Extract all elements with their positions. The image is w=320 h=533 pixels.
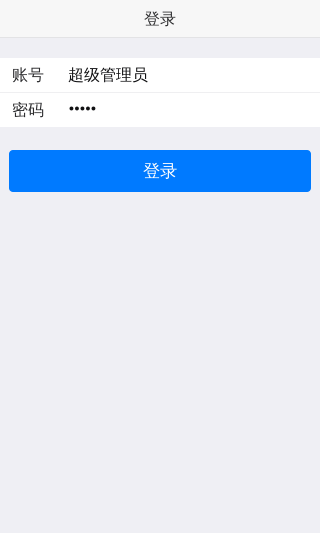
button[interactable]: 账号 bbox=[0, 58, 320, 92]
staticText: 密码 bbox=[12, 100, 44, 120]
staticText: 超级管理员 bbox=[68, 65, 148, 85]
staticText: 登录 bbox=[144, 9, 176, 29]
staticText: 账号 bbox=[12, 65, 44, 85]
staticText: 登录 bbox=[143, 160, 177, 182]
button[interactable]: 密码 bbox=[0, 93, 320, 127]
button[interactable]: 登录 bbox=[9, 150, 311, 192]
